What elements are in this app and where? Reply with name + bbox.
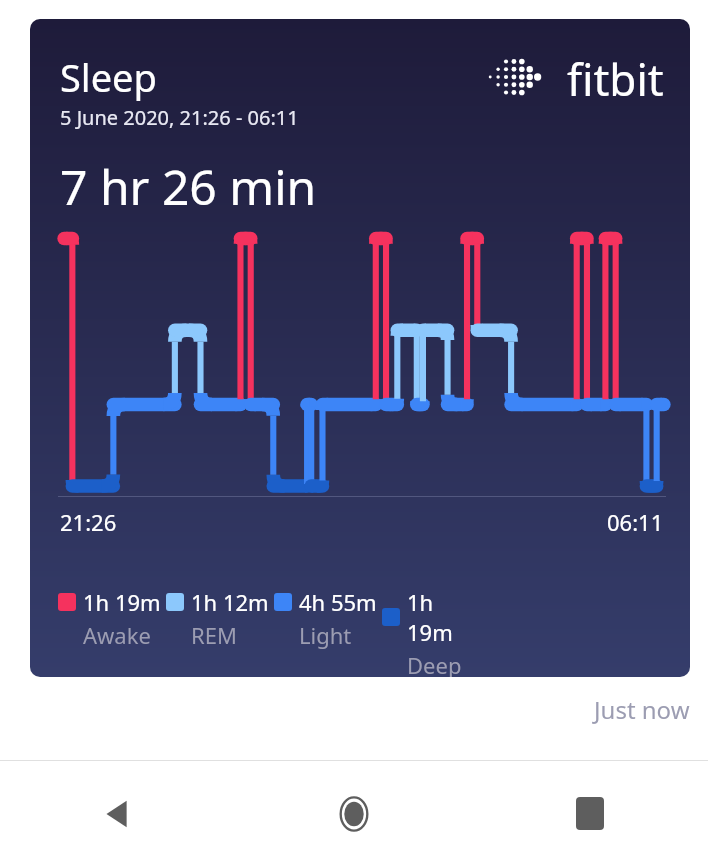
- button[interactable]: Sleep: [30, 19, 690, 677]
- staticText: Deep: [407, 650, 462, 677]
- staticText: 1h 19m: [407, 587, 482, 647]
- staticText: 06:11: [607, 507, 664, 537]
- button[interactable]: Recent apps: [472, 761, 708, 866]
- staticText: Awake: [83, 620, 151, 650]
- staticText: 5 June 2020, 21:26 - 06:11: [60, 104, 299, 131]
- button[interactable]: 1h 19m: [58, 587, 166, 650]
- staticText: Sleep: [60, 51, 157, 103]
- staticText: Light: [299, 620, 352, 650]
- staticText: fitbit: [567, 49, 664, 109]
- staticText: Just now: [594, 693, 690, 726]
- other: Fitbit logo: [490, 54, 542, 100]
- staticText: 4h 55m: [299, 587, 377, 617]
- button[interactable]: 4h 55m: [274, 587, 382, 650]
- staticText: REM: [191, 620, 237, 650]
- button[interactable]: Home: [236, 761, 472, 866]
- staticText: 21:26: [60, 507, 117, 537]
- staticText: 1h 12m: [191, 587, 269, 617]
- button[interactable]: Back: [0, 761, 236, 866]
- button[interactable]: 1h 12m: [166, 587, 274, 650]
- staticText: 7 hr 26 min: [60, 154, 317, 219]
- button[interactable]: 1h 19m: [382, 587, 482, 677]
- staticText: 1h 19m: [83, 587, 161, 617]
